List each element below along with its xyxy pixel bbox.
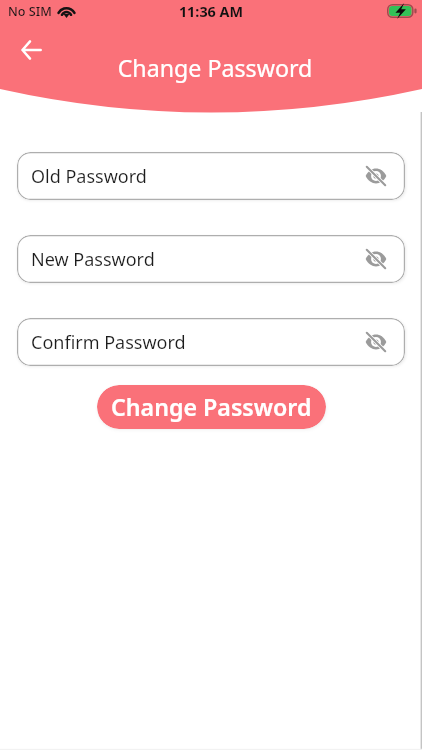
- button[interactable]: Old Password: [17, 152, 405, 200]
- button[interactable]: New Password: [17, 235, 405, 283]
- staticText: No SIM: [8, 3, 52, 20]
- staticText: Change Password: [111, 391, 312, 423]
- staticText: New Password: [31, 247, 155, 272]
- staticText: Old Password: [31, 164, 147, 189]
- button[interactable]: Show password: [364, 247, 388, 271]
- button[interactable]: Back: [10, 28, 54, 72]
- button[interactable]: Show password: [364, 164, 388, 188]
- button[interactable]: Change Password: [97, 385, 326, 429]
- button[interactable]: Confirm Password: [17, 318, 405, 366]
- staticText: Confirm Password: [31, 330, 186, 355]
- button[interactable]: Show password: [364, 330, 388, 354]
- staticText: 11:36 AM: [0, 2, 422, 22]
- staticText: Change Password: [4, 52, 422, 84]
